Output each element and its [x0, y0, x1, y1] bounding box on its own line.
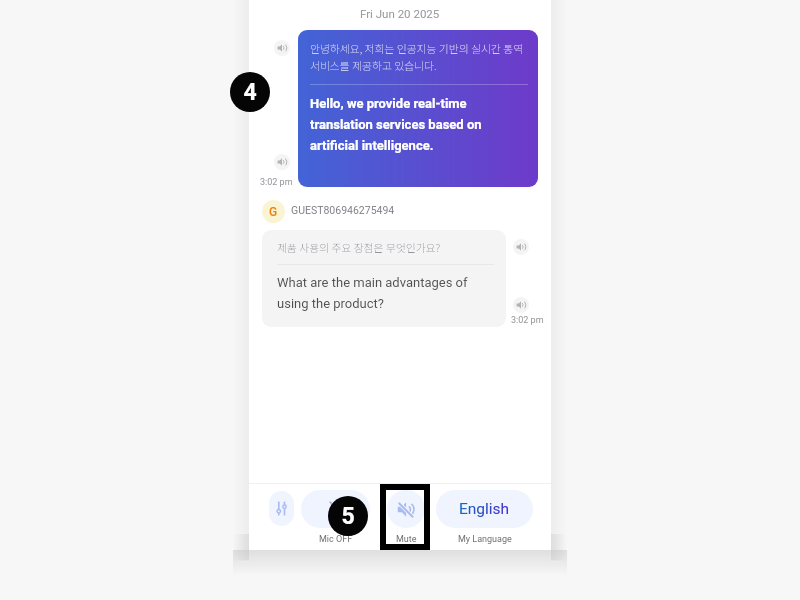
staticText: 4: [243, 79, 257, 106]
staticText: GUEST806946275494: [291, 204, 395, 216]
staticText: 5: [341, 503, 355, 530]
staticText: My Language: [458, 534, 512, 545]
button[interactable]: 제품 사용의 주요 장점은 무엇인가요?: [262, 230, 506, 327]
staticText: What are the main advantages of using th…: [277, 275, 468, 311]
staticText: 제품 사용의 주요 장점은 무엇인가요?: [277, 239, 441, 255]
staticText: Hello, we provide real-time translation …: [310, 96, 482, 153]
button[interactable]: Play audio: [274, 154, 290, 170]
staticText: Fri Jun 20 2025: [360, 7, 440, 20]
button[interactable]: Mute: [387, 490, 425, 545]
button[interactable]: Play audio: [513, 297, 529, 313]
button[interactable]: Play audio: [274, 40, 290, 56]
button[interactable]: English: [436, 490, 533, 545]
staticText: 3:02 pm: [511, 315, 544, 326]
button[interactable]: Mic OFF: [301, 490, 370, 545]
staticText: G: [269, 205, 278, 219]
staticText: Mic OFF: [319, 534, 353, 545]
button[interactable]: 안녕하세요, 저희는 인공지능 기반의 실시간 통역 서비스를 제공하고 있습니…: [298, 30, 538, 187]
button[interactable]: Audio settings: [269, 491, 294, 526]
staticText: English: [459, 500, 510, 518]
button[interactable]: Play audio: [513, 239, 529, 255]
staticText: Mute: [396, 534, 417, 545]
staticText: 안녕하세요, 저희는 인공지능 기반의 실시간 통역 서비스를 제공하고 있습니…: [310, 40, 524, 73]
staticText: 3:02 pm: [260, 177, 293, 188]
